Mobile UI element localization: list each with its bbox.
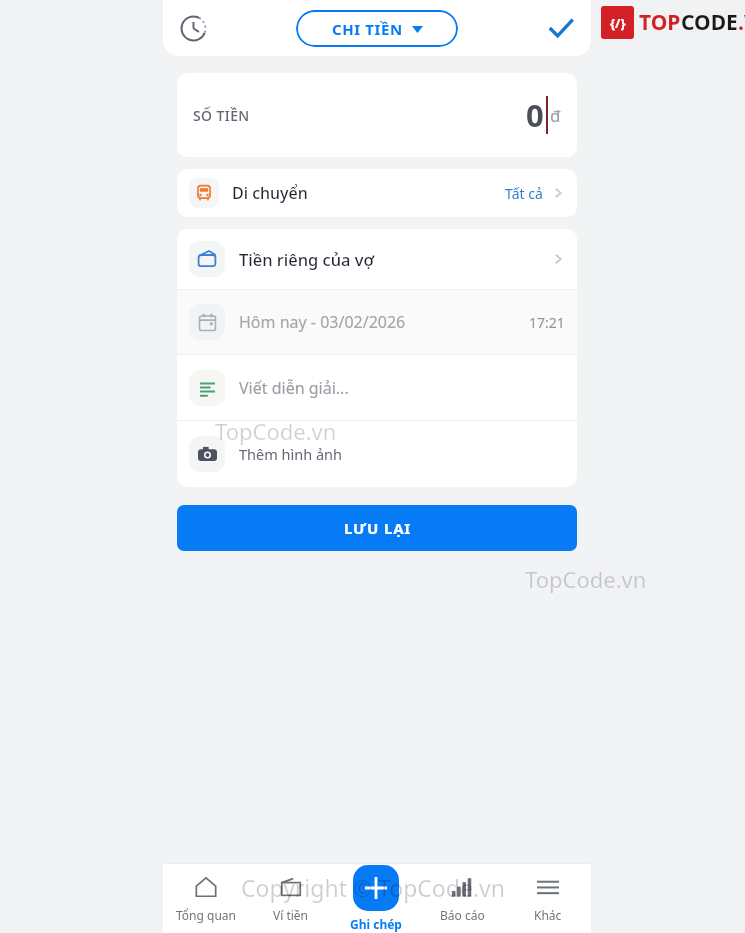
staticText: 17:21: [529, 313, 565, 332]
button[interactable]: CHI TIỀN: [296, 10, 458, 47]
staticText: VN: [744, 8, 745, 37]
staticText: CHI TIỀN: [332, 19, 403, 39]
staticText: Khác: [534, 907, 562, 923]
button[interactable]: Ví tiền: [248, 863, 333, 933]
staticText: SỐ TIỀN: [193, 106, 250, 125]
button[interactable]: Thêm hình ảnh: [177, 421, 577, 487]
staticText: Di chuyển: [232, 182, 308, 204]
button[interactable]: Hôm nay - 03/02/2026: [177, 290, 577, 354]
staticText: Tiền riêng của vợ: [239, 248, 374, 270]
button[interactable]: Tổng quan: [163, 863, 248, 933]
staticText: Ví tiền: [273, 907, 309, 923]
staticText: Thêm hình ảnh: [239, 444, 342, 464]
button[interactable]: SỐ TIỀN: [177, 73, 577, 157]
staticText: TOP: [639, 8, 681, 37]
staticText: Ghi chép: [350, 916, 402, 932]
staticText: Báo cáo: [440, 907, 485, 923]
staticText: TopCode.vn: [525, 564, 647, 594]
staticText: LƯU LẠI: [344, 518, 411, 538]
button[interactable]: Báo cáo: [419, 863, 505, 933]
staticText: Copyright © TopCode.vn: [241, 872, 505, 903]
staticText: Tổng quan: [176, 907, 236, 923]
button[interactable]: Khác: [505, 863, 591, 933]
button[interactable]: LƯU LẠI: [177, 505, 577, 551]
button[interactable]: Viết diễn giải...: [177, 355, 577, 420]
button[interactable]: History: [171, 6, 215, 50]
staticText: .: [738, 8, 744, 37]
staticText: Hôm nay - 03/02/2026: [239, 311, 406, 333]
staticText: Tất cả: [505, 184, 543, 203]
staticText: TopCode.vn: [215, 416, 337, 446]
staticText: đ: [550, 104, 561, 127]
button[interactable]: Di chuyển: [177, 169, 577, 217]
staticText: 0: [526, 94, 544, 136]
button[interactable]: Tiền riêng của vợ: [177, 229, 577, 289]
button[interactable]: Confirm: [539, 6, 583, 50]
staticText: {/}: [610, 14, 626, 32]
button[interactable]: Ghi chép: [333, 863, 419, 933]
staticText: Viết diễn giải...: [239, 377, 349, 399]
staticText: CODE: [681, 8, 738, 37]
